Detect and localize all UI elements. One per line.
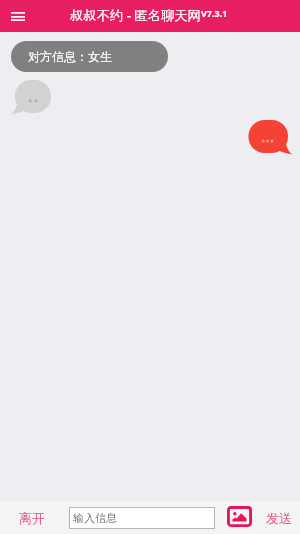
- button[interactable]: 离开: [19, 501, 45, 534]
- staticText: 离开: [19, 510, 45, 526]
- button[interactable]: Menu: [11, 11, 25, 22]
- button[interactable]: 发送: [266, 501, 292, 534]
- staticText: 对方信息：女生: [28, 49, 112, 64]
- staticText: 发送: [266, 510, 292, 526]
- staticText: V7.3.1: [201, 7, 228, 19]
- button[interactable]: Send image: [227, 506, 252, 527]
- staticText: 叔叔不约 - 匿名聊天网: [70, 6, 201, 24]
- staticText: 输入信息: [73, 511, 117, 525]
